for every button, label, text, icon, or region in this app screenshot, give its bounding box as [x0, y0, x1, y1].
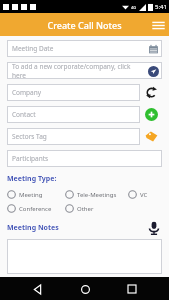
staticText: Meeting Date: [12, 44, 54, 53]
button[interactable]: To add a new corporate/company, click he…: [7, 62, 162, 79]
button[interactable]: Sector tag: [140, 128, 162, 145]
staticText: Conference: [19, 205, 52, 213]
staticText: Other: [77, 205, 94, 213]
staticText: Meeting: [19, 191, 43, 199]
button[interactable]: Other: [65, 204, 128, 213]
staticText: Meeting Type:: [7, 174, 57, 184]
button[interactable]: Pick date: [147, 43, 159, 55]
staticText: Sectors Tag: [12, 132, 47, 141]
button[interactable]: Contact: [7, 106, 140, 123]
button[interactable]: Home: [74, 278, 96, 300]
staticText: Tele-Meetings: [77, 191, 117, 199]
button[interactable]: Recents: [121, 278, 143, 300]
button[interactable]: Add contact: [140, 106, 162, 123]
button[interactable]: Meeting: [7, 190, 65, 199]
button[interactable]: VC: [128, 190, 162, 199]
staticText: Create Call Notes: [47, 19, 122, 31]
button[interactable]: [7, 239, 162, 274]
button[interactable]: Participants: [7, 150, 162, 167]
button[interactable]: Menu: [147, 14, 169, 36]
staticText: 5:41: [155, 3, 167, 11]
button[interactable]: Refresh companies: [140, 84, 162, 101]
staticText: VC: [140, 191, 148, 199]
button[interactable]: Add company: [147, 65, 159, 77]
staticText: To add a new corporate/company, click he…: [12, 62, 142, 79]
button[interactable]: Company: [7, 84, 140, 101]
staticText: Company: [12, 88, 42, 97]
button[interactable]: Conference: [7, 204, 65, 213]
button[interactable]: Back: [26, 278, 48, 300]
staticText: Meeting Notes: [7, 223, 59, 233]
button[interactable]: Voice input: [146, 220, 162, 236]
staticText: 4G: [131, 5, 137, 10]
button[interactable]: Tele-Meetings: [65, 190, 128, 199]
button[interactable]: Sectors Tag: [7, 128, 140, 145]
button[interactable]: Meeting Date: [7, 40, 162, 57]
staticText: Contact: [12, 110, 36, 119]
staticText: Participants: [12, 154, 49, 163]
